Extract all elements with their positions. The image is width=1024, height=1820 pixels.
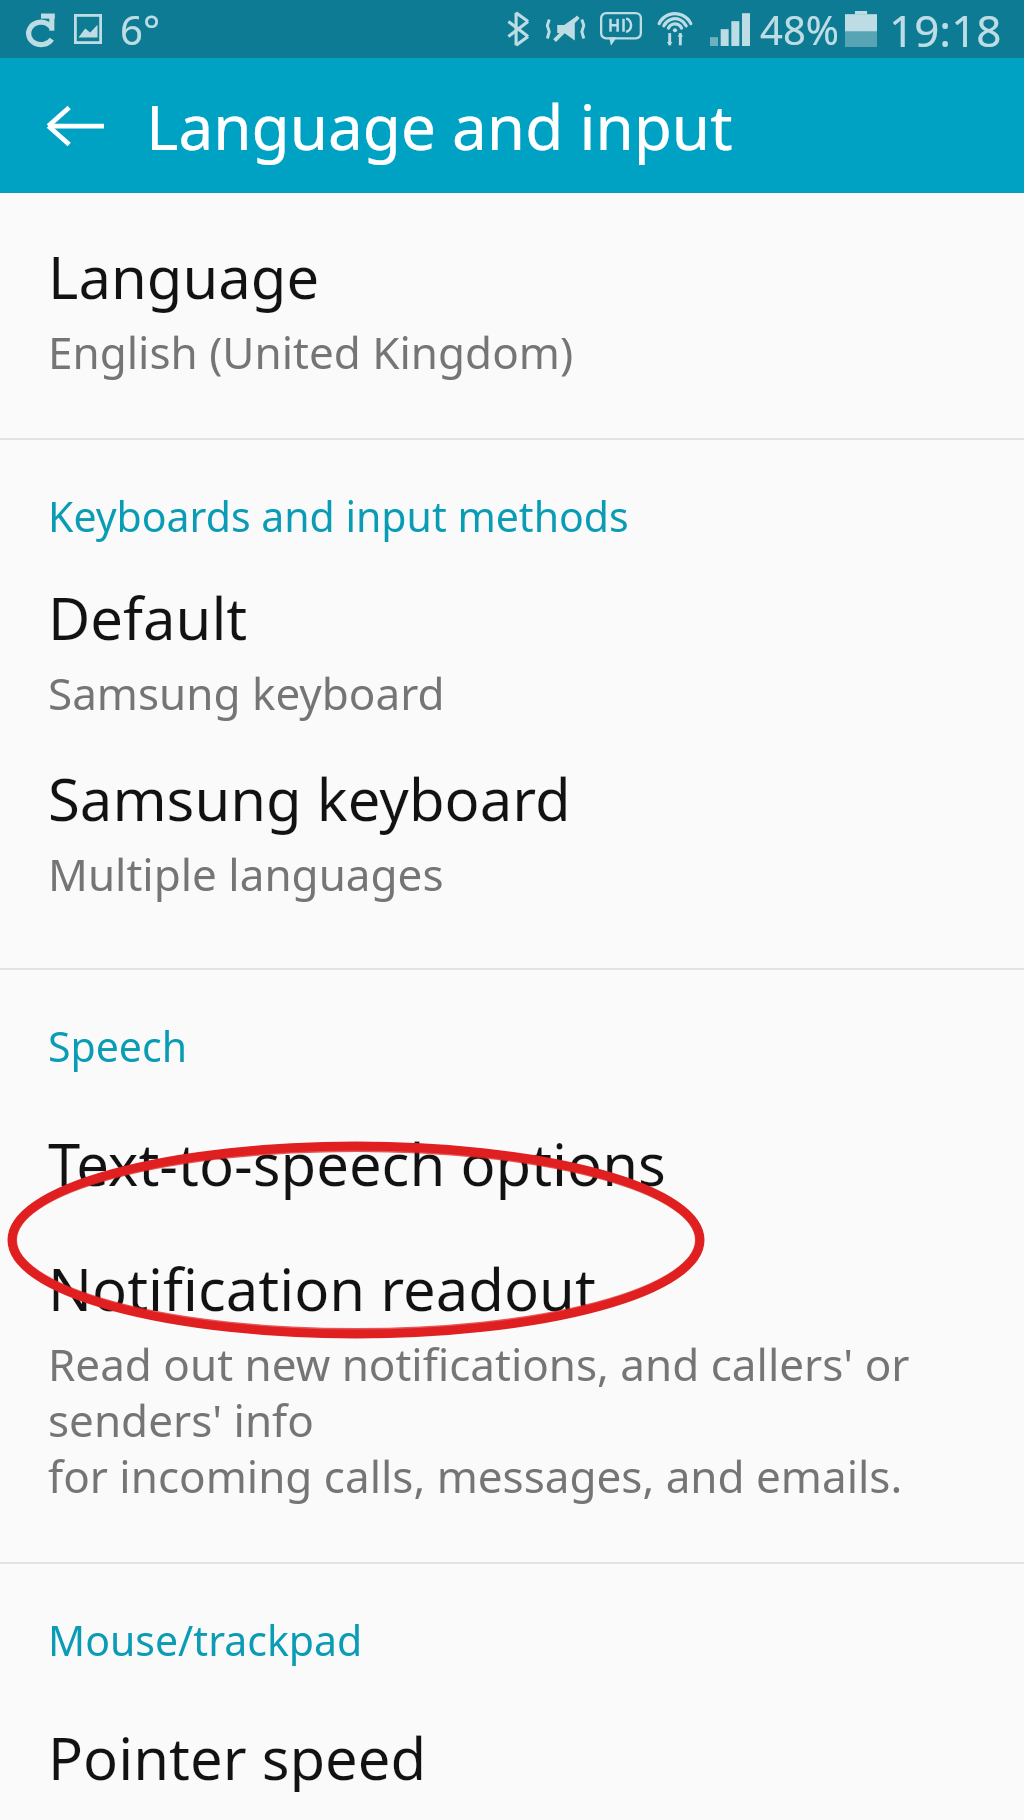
button[interactable]: Navigate up <box>32 83 118 169</box>
staticText: 6° <box>120 2 160 56</box>
staticText: Read out new notifications, and callers'… <box>48 1334 984 1506</box>
staticText: Mouse/trackpad <box>48 1612 363 1668</box>
button[interactable]: Notification readout <box>0 1231 1024 1562</box>
button[interactable]: Default <box>0 566 1024 745</box>
staticText: Notification readout <box>48 1249 596 1328</box>
staticText: Keyboards and input methods <box>48 488 629 544</box>
button[interactable]: Text-to-speech options <box>0 1096 1024 1231</box>
staticText: Samsung keyboard <box>48 663 445 723</box>
staticText: Pointer speed <box>48 1718 427 1792</box>
staticText: Language <box>48 237 320 316</box>
staticText: Text-to-speech options <box>48 1124 666 1203</box>
staticText: Language and input <box>146 84 733 168</box>
staticText: Speech <box>48 1018 187 1074</box>
button[interactable]: Pointer speed <box>0 1690 1024 1820</box>
staticText: 48% <box>760 2 839 56</box>
staticText: 19:18 <box>889 0 1002 58</box>
staticText: English (United Kingdom) <box>48 322 574 382</box>
button[interactable]: Samsung keyboard <box>0 745 1024 968</box>
staticText: Multiple languages <box>48 844 444 904</box>
button[interactable]: Language <box>0 193 1024 438</box>
staticText: Default <box>48 578 248 657</box>
staticText: Samsung keyboard <box>48 759 571 838</box>
